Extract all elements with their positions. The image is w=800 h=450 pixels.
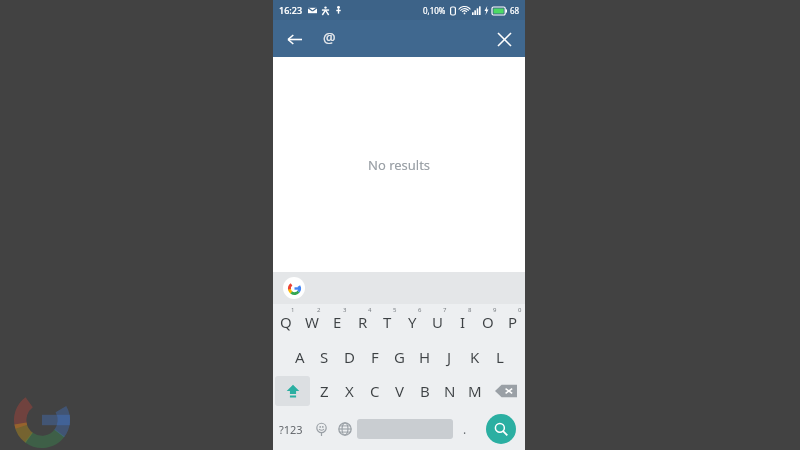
staticText: No results [368,156,431,174]
staticText: 16:23 [279,4,303,16]
staticText: P [508,312,518,332]
button[interactable]: Y [400,304,425,340]
staticText: 5 [393,306,397,314]
button[interactable]: ?123 [273,408,309,450]
button[interactable]: C [362,374,387,408]
button[interactable]: V [387,374,412,408]
button[interactable]: Emoji [309,408,333,450]
button[interactable]: K [462,340,487,374]
button[interactable]: T [375,304,400,340]
staticText: W [305,312,319,332]
button[interactable]: S [312,340,337,374]
button[interactable]: J [437,340,462,374]
staticText: 7 [443,306,447,314]
button[interactable]: E [325,304,350,340]
staticText: 4 [368,306,372,314]
button[interactable]: W [299,304,325,340]
staticText: J [447,347,452,367]
button[interactable]: B [412,374,437,408]
staticText: Z [320,381,329,401]
staticText: B [420,381,430,401]
staticText: F [371,347,379,367]
button[interactable]: Back [279,24,309,54]
button[interactable]: Language [333,408,357,450]
button[interactable]: U [425,304,450,340]
staticText: S [320,347,329,367]
staticText: 68 [510,5,520,16]
staticText: 8 [468,306,472,314]
staticText: 1 [291,306,295,314]
staticText: 9 [493,306,497,314]
staticText: 3 [343,306,347,314]
button[interactable]: Search [477,408,525,450]
staticText: K [470,347,480,367]
staticText: T [383,312,392,332]
button[interactable]: Shift [275,376,310,406]
staticText: O [482,312,494,332]
staticText: I [460,312,466,332]
staticText: 0 [518,306,522,314]
staticText: Y [408,312,417,332]
staticText: @ [323,28,336,47]
staticText: L [496,347,504,367]
staticText: A [295,347,305,367]
button[interactable]: I [450,304,475,340]
button[interactable]: Z [312,374,337,408]
button[interactable]: G [387,340,412,374]
button[interactable]: F [362,340,387,374]
staticText: X [345,381,354,401]
button[interactable]: . [453,408,477,450]
button[interactable]: H [412,340,437,374]
button[interactable]: M [462,374,487,408]
staticText: N [444,381,456,401]
button[interactable]: O [475,304,500,340]
staticText: G [394,347,405,367]
staticText: D [344,347,355,367]
button[interactable]: Q [273,304,299,340]
staticText: ?123 [279,422,303,437]
button[interactable]: N [437,374,462,408]
staticText: Q [280,312,292,332]
staticText: 2 [317,306,321,314]
staticText: U [432,312,443,332]
button[interactable]: Close [489,24,519,54]
staticText: 6 [418,306,422,314]
staticText: V [395,381,405,401]
staticText: M [468,381,482,401]
staticText: . [463,421,467,437]
button[interactable]: A [287,340,312,374]
staticText: 0,10% [423,5,446,16]
button[interactable]: R [350,304,375,340]
button[interactable]: Backspace [487,374,525,408]
staticText: C [370,381,380,401]
staticText: H [419,347,431,367]
button[interactable]: L [487,340,512,374]
button[interactable]: P [500,304,525,340]
button[interactable]: D [337,340,362,374]
staticText: E [333,312,342,332]
button[interactable]: X [337,374,362,408]
button[interactable]: Google [283,277,305,299]
staticText: R [358,312,368,332]
